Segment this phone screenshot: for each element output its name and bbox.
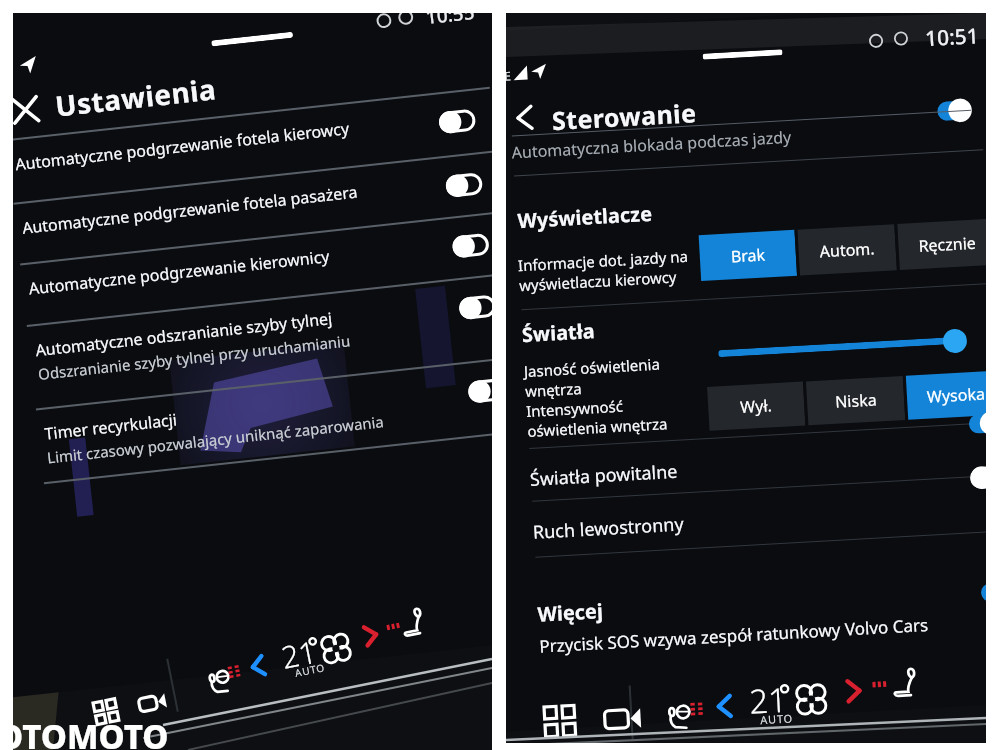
staticText: 21 — [748, 677, 788, 724]
button[interactable]: Driver seat heating — [665, 698, 697, 729]
staticText: Timer recyrkulacji — [43, 408, 179, 445]
staticText: Automatyczne podgrzewanie fotela kierowc… — [14, 117, 350, 175]
staticText: Światła — [521, 317, 596, 348]
staticText: Brak — [730, 243, 766, 267]
button[interactable] — [436, 105, 479, 137]
button[interactable] — [465, 375, 492, 407]
staticText: Ręcznie — [918, 232, 977, 257]
staticText: Wysoka — [926, 382, 985, 408]
button[interactable] — [25, 272, 492, 409]
button[interactable] — [13, 150, 492, 265]
staticText: 21 — [278, 631, 320, 678]
staticText: LTE — [506, 67, 512, 84]
button[interactable]: Passenger seat heating — [889, 665, 921, 697]
staticText: Ruch lewostronny — [532, 511, 684, 545]
button[interactable]: Ręcznie — [897, 219, 986, 270]
staticText: Ustawienia — [53, 69, 218, 125]
button[interactable]: Driver seat heating — [204, 662, 237, 695]
button[interactable] — [933, 96, 975, 126]
staticText: Więcej — [537, 597, 604, 628]
button[interactable] — [965, 408, 986, 438]
button[interactable]: Wył. — [707, 382, 805, 431]
staticText: Intensywność oświetlenia wnętrza — [526, 393, 669, 441]
button[interactable]: Wysoka — [906, 370, 986, 420]
staticText: Automatyczne podgrzewanie kierownicy — [28, 245, 331, 300]
other: Navigation — [18, 54, 39, 75]
button[interactable]: Camera — [604, 699, 645, 741]
button[interactable] — [34, 356, 492, 492]
button[interactable] — [13, 86, 492, 201]
staticText: Przycisk SOS wzywa zespół ratunkowy Volv… — [539, 613, 929, 658]
button[interactable] — [718, 337, 958, 357]
staticText: Odszranianie szyby tylnej przy uruchamia… — [37, 330, 351, 384]
button[interactable]: Close — [13, 94, 41, 125]
staticText: Automatyczne odszranianie szyby tylnej — [34, 307, 334, 361]
staticText: OTOMOTO — [13, 714, 169, 750]
button[interactable]: Passenger seat heating — [397, 604, 429, 637]
button[interactable]: Autom. — [797, 224, 897, 275]
staticText: AUTO — [294, 660, 327, 680]
button[interactable]: Apps — [93, 699, 119, 725]
button[interactable]: Fan — [321, 633, 351, 664]
button[interactable] — [532, 475, 986, 557]
staticText: Automatyczna blokada podczas jazdy — [511, 126, 792, 163]
staticText: Wyświetlacze — [517, 200, 653, 234]
button[interactable] — [449, 230, 492, 262]
staticText: Niska — [834, 388, 878, 413]
button[interactable]: Apps — [544, 705, 576, 737]
staticText: 10:51 — [924, 21, 980, 53]
button[interactable]: Camera — [137, 686, 171, 721]
staticText: Limit czasowy pozwalający uniknąć zaparo… — [46, 411, 385, 468]
button[interactable]: Temperature down — [246, 653, 272, 679]
button[interactable]: Temperature up — [840, 678, 865, 704]
button[interactable] — [456, 291, 492, 323]
button[interactable]: Niska — [806, 376, 905, 425]
button[interactable]: Temperature down — [713, 693, 738, 719]
staticText: Automatyczne podgrzewanie fotela pasażer… — [21, 180, 359, 239]
staticText: Jasność oświetlenia wnętrza — [523, 353, 662, 401]
button[interactable]: Brak — [699, 230, 797, 281]
staticText: Autom. — [819, 237, 875, 262]
staticText: Światła powitalne — [529, 459, 678, 492]
staticText: 10:55 — [424, 13, 476, 30]
button[interactable] — [529, 425, 986, 507]
staticText: AUTO — [760, 710, 794, 727]
button[interactable] — [443, 169, 486, 201]
button[interactable] — [968, 462, 986, 492]
staticText: Wył. — [740, 394, 773, 418]
button[interactable] — [18, 210, 492, 325]
button[interactable]: Temperature up — [357, 623, 383, 648]
button[interactable]: Back — [512, 104, 539, 131]
button[interactable]: Fan — [796, 685, 826, 714]
staticText: Informacje dot. jazdy na wyświetlaczu ki… — [517, 246, 690, 295]
staticText: Sterowanie — [551, 95, 698, 137]
